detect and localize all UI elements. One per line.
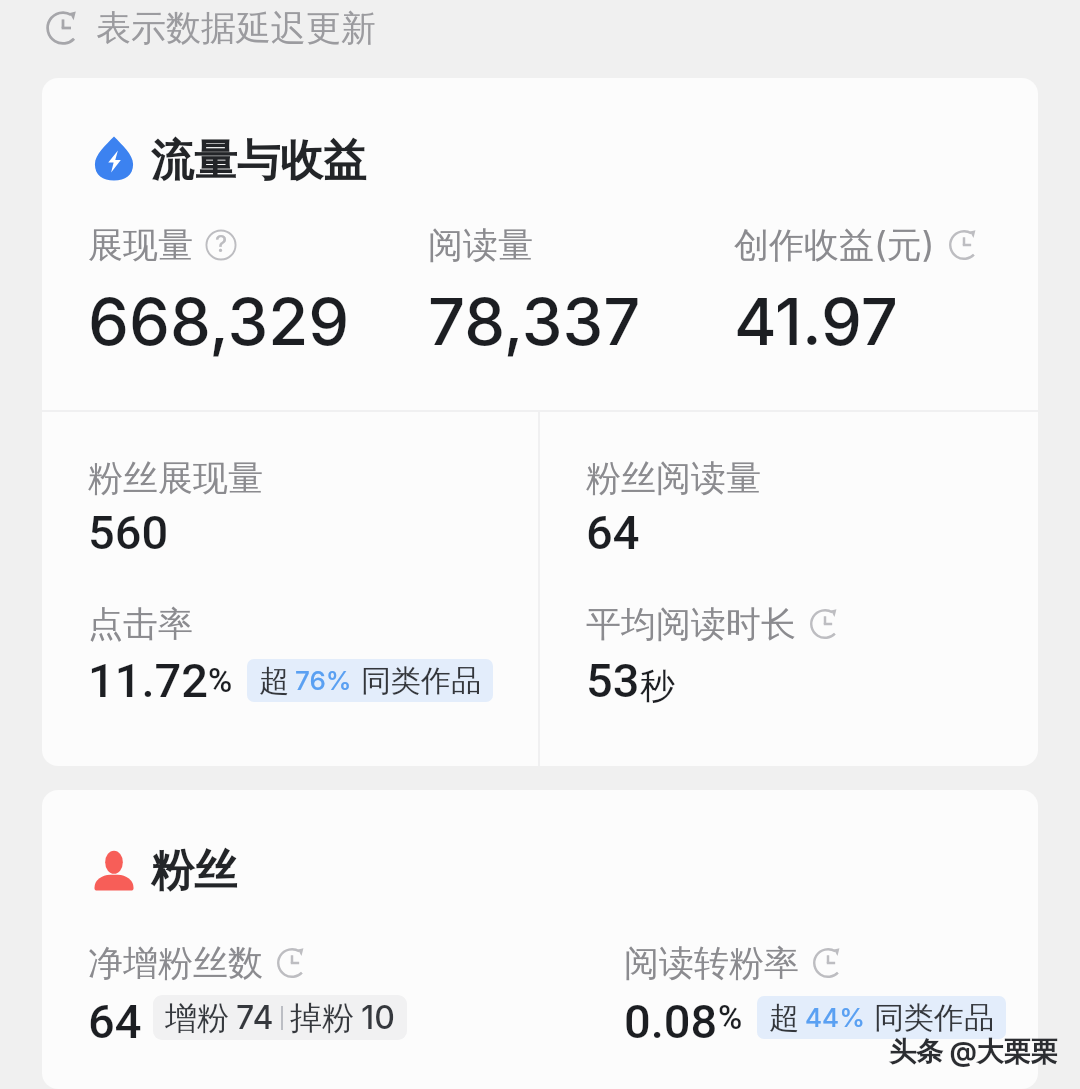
staticText: 0.08: [624, 994, 718, 1041]
staticText: 流量与收益: [151, 134, 366, 188]
staticText: 净增粉丝数: [88, 941, 263, 985]
button[interactable]: 粉丝: [88, 844, 237, 898]
staticText: ?: [215, 230, 228, 258]
staticText: 64: [586, 505, 640, 560]
staticText: 10: [361, 998, 395, 1037]
staticText: 增粉: [165, 998, 229, 1038]
staticText: 头条 @大栗栗: [889, 1035, 1058, 1069]
staticText: %: [718, 998, 743, 1037]
staticText: 阅读量: [428, 223, 533, 267]
staticText: 点击率: [88, 602, 193, 646]
staticText: 53: [586, 653, 640, 708]
staticText: 展现量: [88, 223, 193, 267]
staticText: 粉丝阅读量: [586, 456, 761, 500]
staticText: 78,337: [428, 282, 641, 361]
staticText: 粉丝展现量: [88, 456, 263, 500]
button[interactable]: 超: [757, 996, 1006, 1039]
staticText: 同类作品: [874, 999, 994, 1037]
staticText: 超: [259, 662, 289, 700]
staticText: 44%: [805, 1002, 865, 1033]
staticText: 粉丝: [151, 844, 237, 898]
staticText: 平均阅读时长: [586, 602, 796, 646]
staticText: 560: [88, 505, 169, 560]
staticText: 668,329: [88, 282, 350, 361]
staticText: 64: [88, 994, 142, 1041]
staticText: 掉粉: [290, 998, 354, 1038]
staticText: 阅读转粉率: [624, 941, 799, 985]
staticText: 11.72: [88, 653, 208, 708]
button[interactable]: 超: [247, 659, 493, 702]
staticText: 76%: [295, 665, 352, 696]
staticText: 41.97: [734, 282, 898, 361]
staticText: 同类作品: [361, 662, 481, 700]
button[interactable]: 流量与收益: [88, 134, 366, 188]
button[interactable]: Help about impressions: [205, 229, 237, 261]
staticText: 74: [236, 998, 274, 1037]
staticText: 表示数据延迟更新: [96, 6, 376, 50]
staticText: 创作收益(元): [734, 223, 935, 267]
button[interactable]: 增粉: [153, 995, 407, 1040]
staticText: 超: [769, 999, 799, 1037]
staticText: 秒: [640, 664, 675, 708]
staticText: %: [208, 661, 233, 700]
